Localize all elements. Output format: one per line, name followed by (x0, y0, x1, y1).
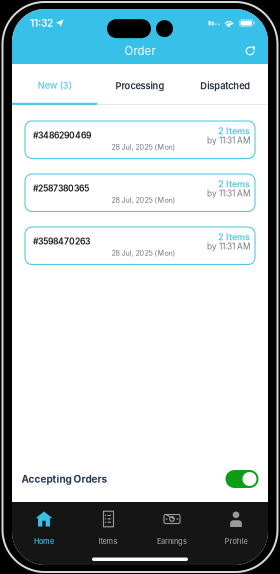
button[interactable]: New (3) (12, 64, 97, 105)
button[interactable]: Earnings (140, 511, 204, 546)
staticText: 28 Jul, 2025 (Mon) (111, 249, 175, 258)
staticText: 28 Jul, 2025 (Mon) (111, 196, 175, 205)
staticText: by 11:31 AM (207, 241, 250, 251)
staticText: #3598470263 (33, 236, 90, 246)
button[interactable]: Dispatched (183, 64, 268, 105)
staticText: 2 Items (218, 178, 250, 189)
staticText: Earnings (157, 537, 187, 546)
staticText: 2 Items (218, 125, 250, 136)
staticText: by 11:31 AM (207, 135, 250, 145)
staticText: Order (124, 44, 155, 58)
button[interactable]: Home (12, 511, 76, 546)
staticText: Dispatched (200, 80, 250, 91)
button[interactable]: Items (76, 511, 140, 546)
staticText: #3486290469 (33, 130, 91, 140)
button[interactable]: Refresh (239, 40, 261, 66)
staticText: 11:32 (30, 17, 53, 29)
button[interactable]: Profile (204, 511, 268, 546)
staticText: 28 Jul, 2025 (Mon) (111, 143, 175, 152)
button[interactable]: Accepting orders toggle (225, 470, 258, 488)
button[interactable]: #3486290469 (25, 121, 255, 158)
staticText: Accepting Orders (21, 473, 107, 485)
staticText: Profile (224, 537, 247, 546)
staticText: Home (34, 537, 54, 546)
button[interactable]: #2587380365 (25, 174, 255, 211)
staticText: Items (98, 537, 117, 546)
staticText: #2587380365 (33, 183, 89, 193)
staticText: Processing (115, 80, 164, 91)
staticText: New (3) (38, 80, 72, 91)
button[interactable]: #3598470263 (25, 227, 255, 264)
staticText: by 11:31 AM (207, 188, 250, 198)
staticText: 2 Items (218, 231, 250, 242)
button[interactable]: Processing (97, 64, 183, 105)
